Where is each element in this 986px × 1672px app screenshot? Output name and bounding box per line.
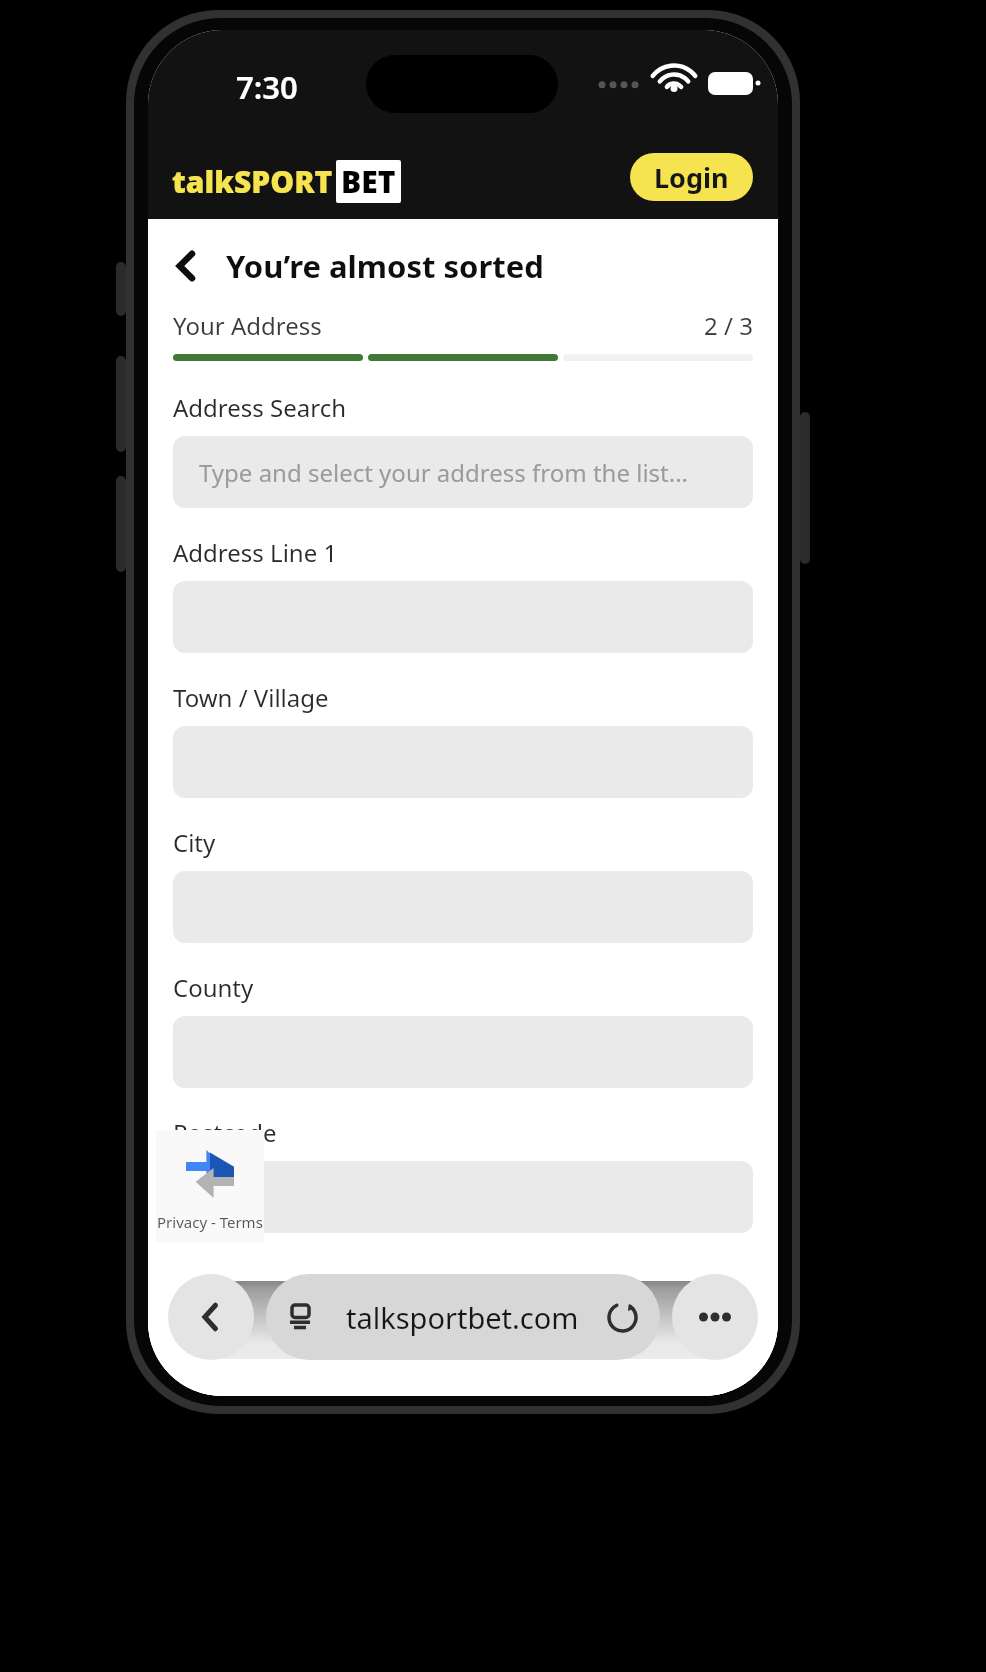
staticText: Type and select your address from the li… (199, 456, 689, 489)
staticText: Postcode (173, 1116, 277, 1149)
button[interactable]: Back (168, 1274, 254, 1360)
button[interactable]: Continue To Last Step (173, 1281, 753, 1359)
staticText: Privacy - Terms (157, 1212, 263, 1232)
staticText: Address Search (173, 391, 347, 424)
button[interactable]: Type and select your address from the li… (173, 436, 753, 508)
staticText: BET (341, 161, 396, 202)
button[interactable]: More options (672, 1274, 758, 1360)
button[interactable]: Back (164, 243, 210, 289)
staticText: 2 / 3 (704, 309, 753, 342)
staticText: talksportbet.com (346, 1298, 579, 1337)
staticText: SPORT (234, 161, 333, 202)
staticText: You’re almost sorted (226, 245, 544, 287)
staticText: Continue To Last Step (318, 1302, 609, 1339)
button[interactable]: talksportbet.com (266, 1274, 660, 1360)
staticText: Town / Village (173, 681, 329, 714)
staticText: Address Line 1 (173, 536, 338, 569)
button[interactable]: Login (630, 153, 753, 201)
staticText: talk (172, 161, 234, 202)
staticText: City (173, 826, 216, 859)
button[interactable] (173, 1161, 753, 1233)
staticText: Login (654, 159, 729, 196)
staticText: County (173, 971, 254, 1004)
staticText: 7:30 (236, 66, 298, 108)
staticText: Your Address (173, 309, 322, 342)
